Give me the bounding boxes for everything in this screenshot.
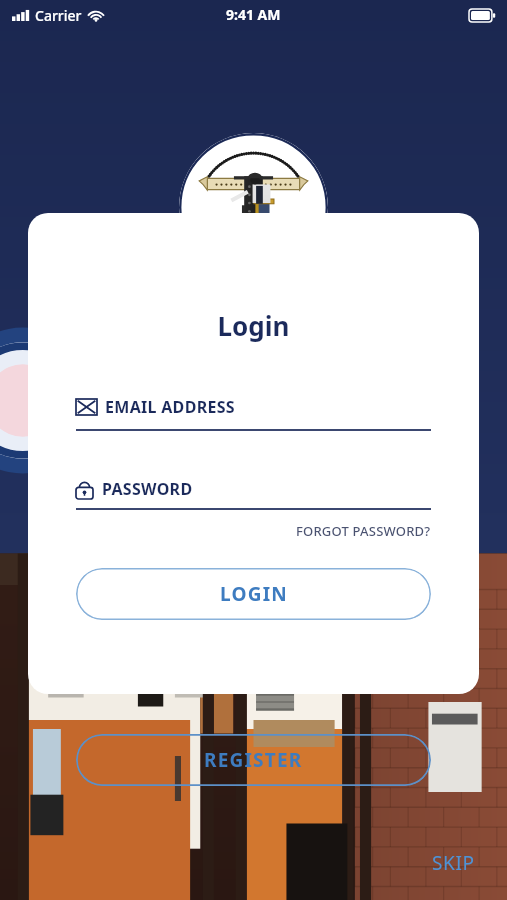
button[interactable]: EMAIL ADDRESS [76,396,431,431]
button[interactable]: PASSWORD [76,478,431,510]
button[interactable]: SKIP [426,844,481,882]
staticText: REGISTER [204,747,303,773]
staticText: FORGOT PASSWORD? [296,522,431,540]
button[interactable]: REGISTER [76,734,431,786]
button[interactable]: FORGOT PASSWORD? [296,519,431,543]
staticText: LOGIN [220,581,288,607]
staticText: 9:41 AM [226,5,281,24]
button[interactable]: LOGIN [76,568,431,620]
staticText: Login [28,308,479,343]
staticText: PASSWORD [102,478,193,500]
staticText: Carrier [35,6,82,25]
staticText: EMAIL ADDRESS [105,396,235,418]
staticText: SKIP [432,850,475,876]
